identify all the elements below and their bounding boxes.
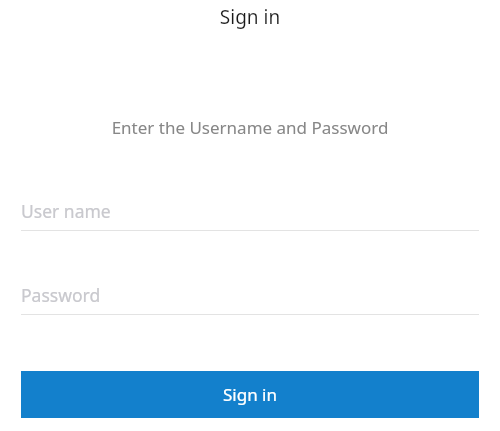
staticText: User name bbox=[21, 199, 111, 223]
staticText: Password bbox=[21, 283, 101, 307]
button[interactable]: User name input bbox=[21, 199, 479, 231]
staticText: Enter the Username and Password bbox=[0, 116, 500, 139]
staticText: Sign in bbox=[223, 383, 277, 406]
button[interactable]: Password input bbox=[21, 283, 479, 315]
button[interactable]: Sign in bbox=[21, 371, 479, 418]
staticText: Sign in bbox=[0, 4, 500, 30]
